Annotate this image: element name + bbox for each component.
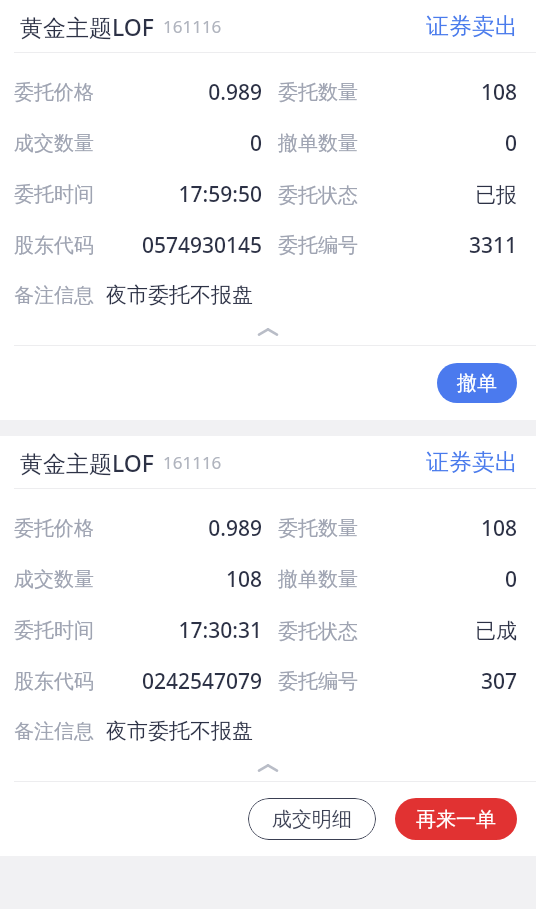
staticText: 307 <box>358 667 517 696</box>
staticText: 委托状态 <box>278 183 358 208</box>
staticText: 0.989 <box>94 514 262 543</box>
staticText: 161116 <box>163 15 222 38</box>
staticText: 161116 <box>163 451 222 474</box>
staticText: 黄金主题LOF <box>20 11 154 42</box>
staticText: 108 <box>358 514 517 543</box>
staticText: 0 <box>358 565 517 594</box>
staticText: 夜市委托不报盘 <box>106 718 253 744</box>
staticText: 委托时间 <box>14 182 94 207</box>
staticText: 委托数量 <box>278 80 358 105</box>
staticText: 委托价格 <box>14 516 94 541</box>
staticText: 成交数量 <box>14 567 94 592</box>
staticText: 已成 <box>358 618 517 644</box>
button[interactable]: 黄金主题LOF <box>0 436 536 489</box>
staticText: 17:30:31 <box>94 616 262 645</box>
staticText: 17:59:50 <box>94 180 262 209</box>
button[interactable]: 黄金主题LOF <box>0 0 536 53</box>
staticText: 再来一单 <box>416 807 496 832</box>
staticText: 108 <box>94 565 262 594</box>
staticText: 已报 <box>358 182 517 208</box>
staticText: 委托编号 <box>278 233 358 258</box>
button[interactable]: Collapse <box>0 755 536 781</box>
staticText: 撤单数量 <box>278 131 358 156</box>
staticText: 108 <box>358 78 517 107</box>
staticText: 股东代码 <box>14 669 94 694</box>
staticText: 撤单数量 <box>278 567 358 592</box>
staticText: 成交数量 <box>14 131 94 156</box>
staticText: 夜市委托不报盘 <box>106 282 253 308</box>
staticText: 0.989 <box>94 78 262 107</box>
staticText: 0 <box>94 129 262 158</box>
staticText: 黄金主题LOF <box>20 447 154 478</box>
staticText: 委托状态 <box>278 619 358 644</box>
staticText: 0242547079 <box>94 667 262 696</box>
staticText: 备注信息 <box>14 719 94 744</box>
button[interactable]: Collapse <box>0 319 536 345</box>
staticText: 委托价格 <box>14 80 94 105</box>
staticText: 撤单 <box>457 371 497 396</box>
staticText: 证券卖出 <box>426 12 518 41</box>
staticText: 股东代码 <box>14 233 94 258</box>
button[interactable]: 成交明细 <box>248 798 376 840</box>
staticText: 委托数量 <box>278 516 358 541</box>
staticText: 成交明细 <box>272 807 352 832</box>
staticText: 3311 <box>358 231 517 260</box>
staticText: 委托时间 <box>14 618 94 643</box>
button[interactable]: 再来一单 <box>395 798 517 840</box>
staticText: 0574930145 <box>94 231 262 260</box>
staticText: 委托编号 <box>278 669 358 694</box>
button[interactable]: 撤单 <box>437 363 517 403</box>
staticText: 证券卖出 <box>426 448 518 477</box>
staticText: 备注信息 <box>14 283 94 308</box>
staticText: 0 <box>358 129 517 158</box>
